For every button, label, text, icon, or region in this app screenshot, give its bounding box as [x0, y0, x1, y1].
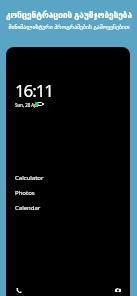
staticText: მინიმალისტური პროგრამების გამოყენებით: [8, 23, 130, 31]
staticText: Photos: [15, 189, 35, 197]
button[interactable]: Calendar: [6, 200, 130, 215]
staticText: Calendar: [15, 204, 41, 212]
staticText: 16:11: [15, 79, 53, 102]
button[interactable]: Photos: [6, 185, 130, 200]
button[interactable]: Calculator: [6, 170, 130, 185]
button[interactable]: Camera: [115, 288, 121, 292]
button[interactable]: Phone: [16, 288, 21, 293]
staticText: Sun, 28 Apr: [15, 102, 39, 108]
staticText: კონცენტრაციის გაუმჯობესება: [6, 9, 132, 20]
staticText: Calculator: [15, 174, 44, 182]
